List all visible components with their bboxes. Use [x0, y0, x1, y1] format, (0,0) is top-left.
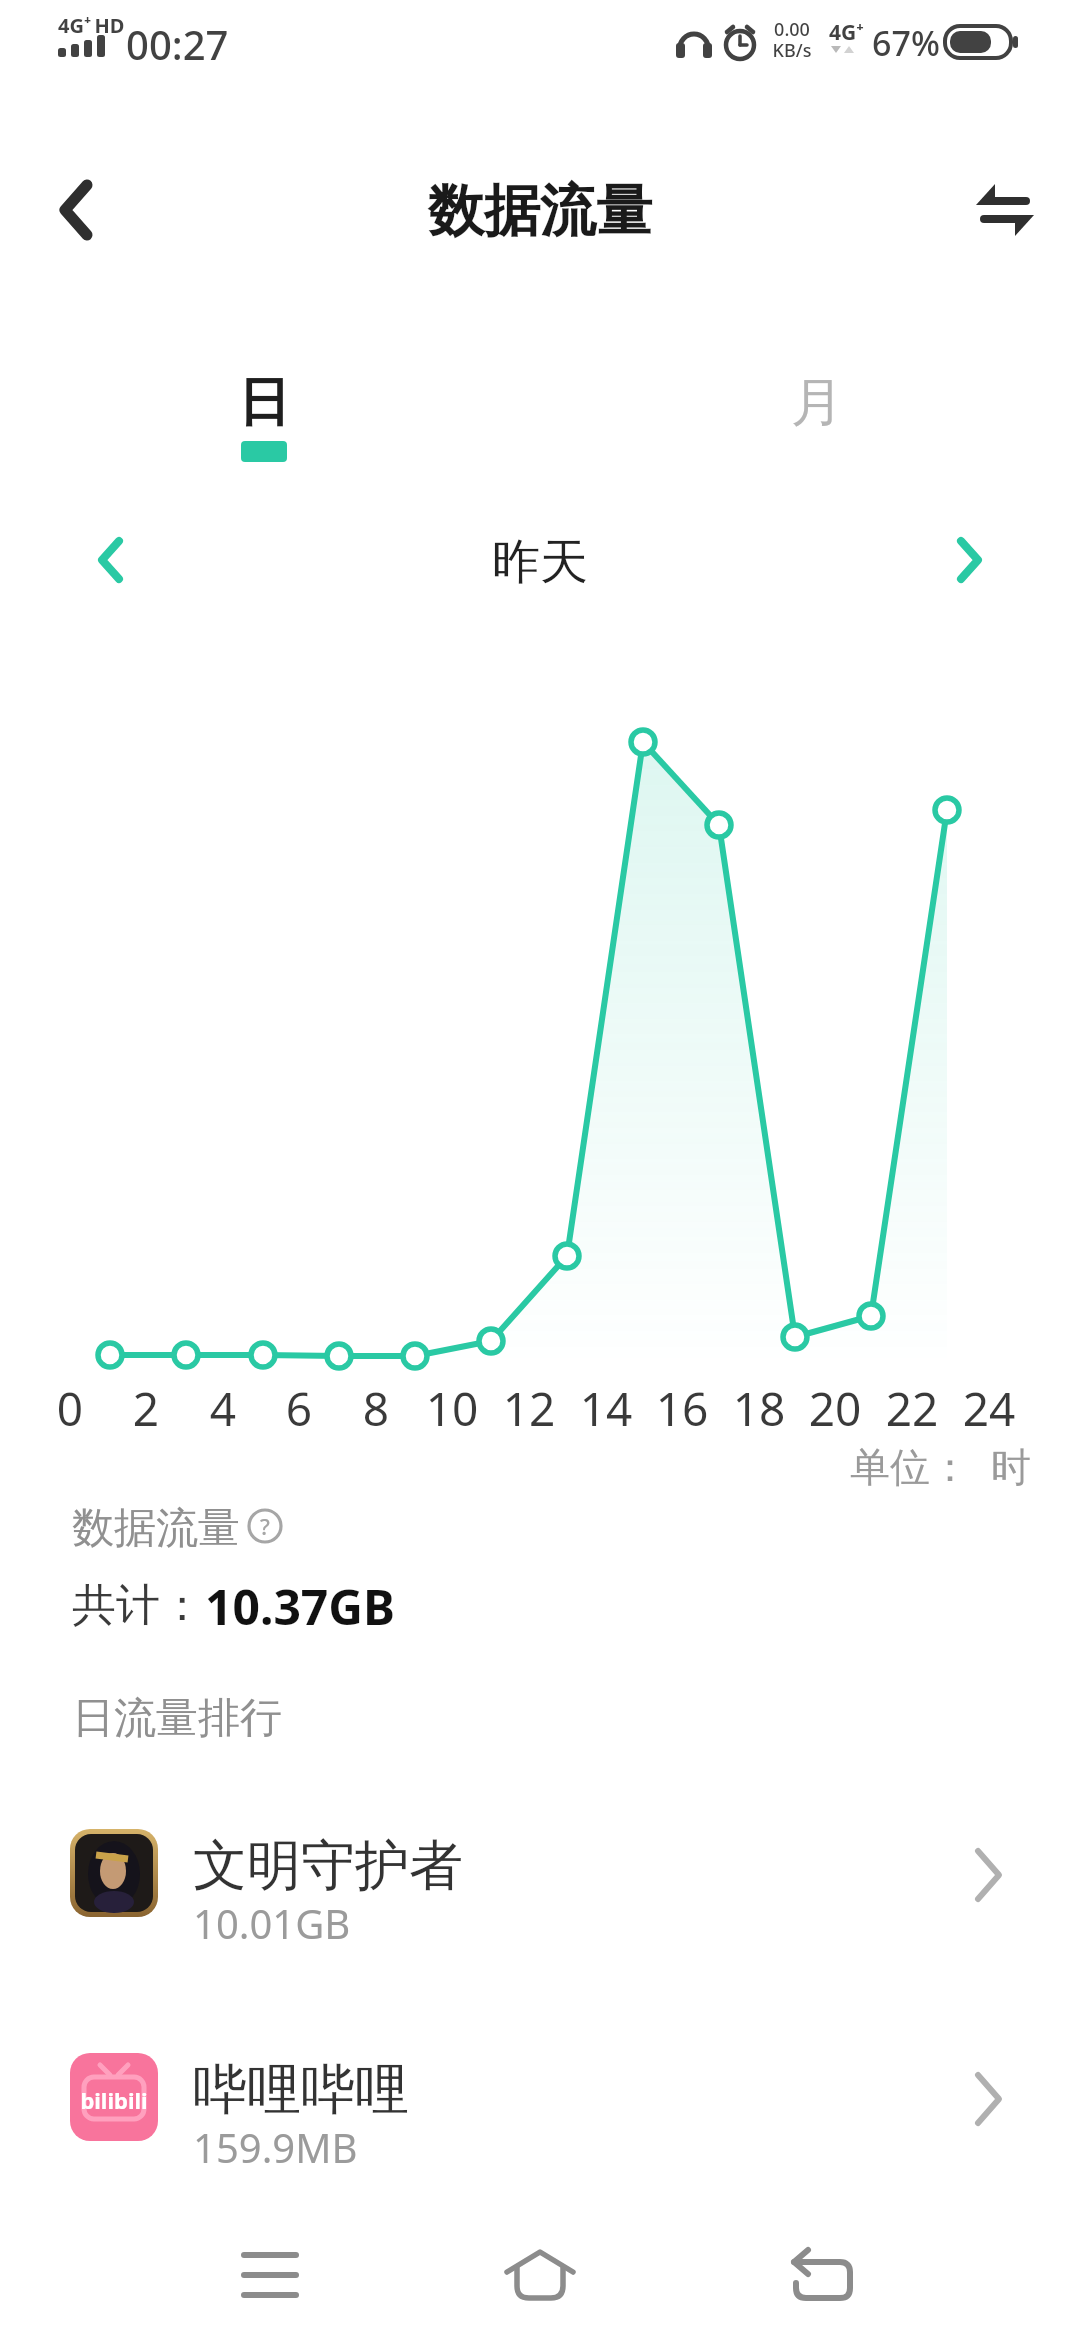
- button[interactable]: 文明守护者: [0, 1810, 1080, 1940]
- button[interactable]: [36, 170, 116, 250]
- staticText: 24: [944, 1377, 1034, 1440]
- staticText: 14: [561, 1377, 651, 1440]
- staticText: 0.00: [752, 17, 832, 42]
- staticText: bilibili: [70, 2085, 158, 2115]
- staticText: 2: [101, 1377, 191, 1440]
- button[interactable]: ?: [245, 1506, 285, 1546]
- staticText: 哔哩哔哩: [193, 2056, 409, 2124]
- button[interactable]: bilibili: [0, 2034, 1080, 2164]
- staticText: 0: [25, 1377, 115, 1440]
- staticText: 日: [238, 370, 290, 436]
- staticText: 数据流量: [340, 176, 740, 247]
- staticText: 10.37GB: [205, 1574, 395, 1639]
- staticText: 00:27: [126, 17, 229, 71]
- staticText: ?: [260, 1511, 270, 1541]
- button[interactable]: 月: [697, 370, 937, 470]
- button[interactable]: [70, 520, 150, 600]
- staticText: 18: [714, 1377, 804, 1440]
- button[interactable]: 日: [144, 370, 384, 462]
- staticText: 数据流量: [72, 1502, 240, 1555]
- staticText: 日流量排行: [72, 1692, 282, 1745]
- staticText: 昨天: [440, 532, 640, 592]
- staticText: 12: [484, 1377, 574, 1440]
- staticText: 159.9MB: [193, 2120, 358, 2174]
- staticText: 4G⁺: [829, 18, 864, 47]
- button[interactable]: [930, 520, 1010, 600]
- staticText: 文明守护者: [193, 1832, 463, 1900]
- staticText: 22: [867, 1377, 957, 1440]
- staticText: 单位： 时: [850, 1438, 1031, 1493]
- staticText: 4G⁺ HD: [58, 12, 125, 39]
- button[interactable]: [210, 2215, 330, 2335]
- staticText: 6: [254, 1377, 344, 1440]
- button[interactable]: 昨天: [0, 0, 200, 60]
- staticText: 共计：: [72, 1578, 204, 1633]
- staticText: 月: [791, 370, 843, 436]
- staticText: 16: [637, 1377, 727, 1440]
- button[interactable]: [763, 2215, 883, 2335]
- staticText: KB/s: [752, 38, 832, 63]
- staticText: 4: [178, 1377, 268, 1440]
- staticText: 8: [331, 1377, 421, 1440]
- staticText: 10: [407, 1377, 497, 1440]
- staticText: 20: [790, 1377, 880, 1440]
- button[interactable]: [480, 2215, 600, 2335]
- staticText: 10.01GB: [193, 1896, 351, 1950]
- button[interactable]: [960, 170, 1050, 250]
- staticText: 67%: [872, 20, 940, 66]
